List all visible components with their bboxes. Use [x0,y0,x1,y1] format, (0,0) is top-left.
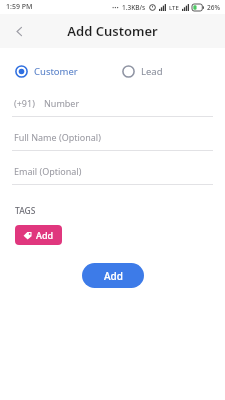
button[interactable]: Email (Optional) [0,165,225,184]
button[interactable]: Back [6,18,32,44]
button[interactable]: Add [82,263,144,288]
staticText: TAGS [15,205,36,217]
button[interactable]: Full Name (Optional) [0,131,225,150]
staticText: Number [44,97,80,109]
staticText: Lead [141,65,163,78]
button[interactable]: Add [15,225,62,245]
staticText: (+91) [14,97,35,109]
staticText: LTE [169,4,179,12]
staticText: Add [36,229,54,241]
staticText: Add [104,269,123,283]
staticText: Add Customer [67,22,158,40]
staticText: Email (Optional) [14,165,82,177]
staticText: Full Name (Optional) [14,131,101,143]
staticText: Customer [34,65,78,78]
button[interactable]: Lead [120,62,165,81]
button[interactable]: (+91) [0,97,225,116]
staticText: 26% [207,3,220,12]
staticText: ••• [112,4,119,12]
staticText: 1.3KB/s [122,3,146,12]
staticText: 1:59 PM [6,2,33,12]
button[interactable]: Customer [13,62,80,81]
